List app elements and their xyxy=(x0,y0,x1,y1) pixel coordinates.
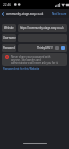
staticText: Password xyxy=(3,46,15,50)
button[interactable]: https://community-stage.easy.co.uk xyxy=(18,24,67,32)
staticText: ThinkyGFG1! xyxy=(37,46,53,50)
staticText: Not Secure xyxy=(52,12,67,16)
button[interactable]: Back xyxy=(0,9,6,18)
button[interactable]: ThinkyGFG1! xyxy=(18,44,67,52)
staticText: Website xyxy=(4,26,14,30)
button[interactable]: Password not for this Website xyxy=(3,67,40,71)
staticText: Password not for this Website xyxy=(3,67,40,71)
button[interactable]: Not Secure xyxy=(52,12,69,16)
staticText: Never share your password with anyone. S… xyxy=(11,55,59,64)
staticText: 22:46 xyxy=(3,3,12,7)
staticText: https://community-stage.easy.co.uk xyxy=(20,26,65,30)
button[interactable]: Show password xyxy=(55,46,59,50)
staticText: community-stage.easy.co.uk xyxy=(6,12,44,16)
staticText: Username xyxy=(3,36,16,40)
button[interactable]: Copy password xyxy=(61,46,65,50)
button[interactable]: Password xyxy=(2,44,16,52)
button[interactable]: Username xyxy=(2,34,16,42)
button[interactable]: Website xyxy=(2,24,16,32)
